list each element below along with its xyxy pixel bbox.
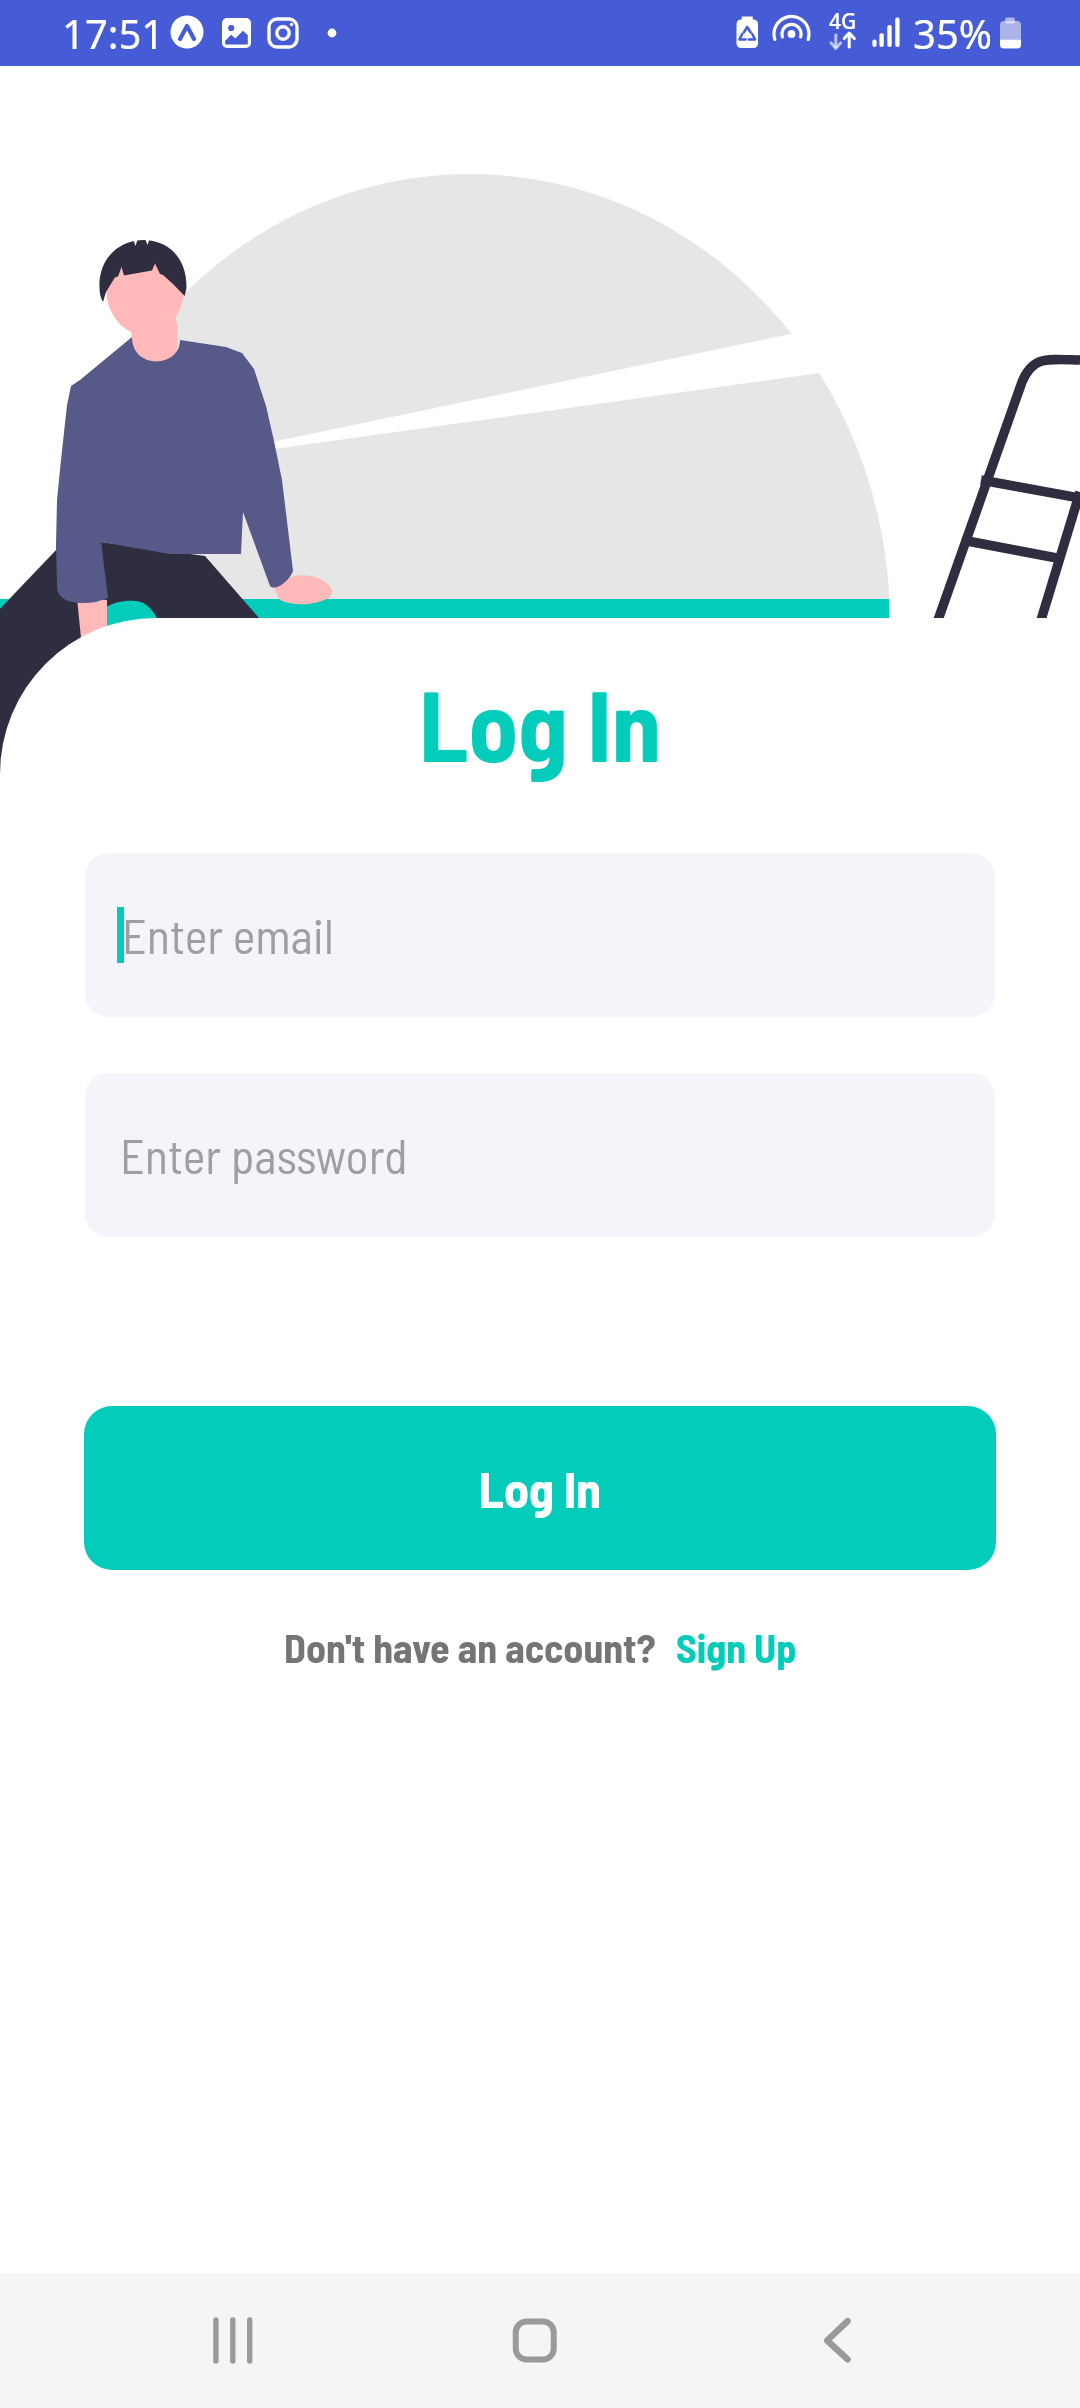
staticText: 35% xyxy=(913,6,992,60)
staticText: Sign Up xyxy=(676,1623,797,1671)
button[interactable]: Recent apps xyxy=(0,2273,360,2408)
button[interactable]: Home xyxy=(360,2273,720,2408)
button[interactable]: Enter email xyxy=(85,853,995,1017)
staticText: 4G xyxy=(829,7,857,36)
staticText: 17:51 xyxy=(62,6,165,60)
button[interactable]: Back xyxy=(720,2273,1080,2408)
staticText: Enter email xyxy=(122,906,334,964)
button[interactable]: Sign Up xyxy=(676,1623,797,1671)
button[interactable]: Log In xyxy=(84,1406,996,1570)
staticText: Don't have an account? xyxy=(284,1623,656,1671)
staticText: Log In xyxy=(0,663,1080,782)
staticText: Log In xyxy=(479,1458,602,1518)
staticText: Enter password xyxy=(120,1126,408,1184)
button[interactable]: Enter password xyxy=(85,1073,995,1237)
